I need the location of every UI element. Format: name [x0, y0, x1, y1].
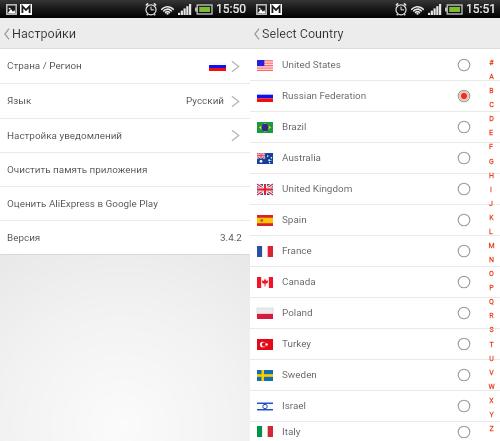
staticText: Страна / Регион — [7, 60, 82, 72]
staticText: O — [489, 270, 494, 278]
staticText: P — [489, 284, 494, 292]
staticText: G — [489, 158, 494, 166]
staticText: Spain — [282, 214, 307, 226]
staticText: K — [489, 214, 494, 222]
staticText: L — [489, 228, 493, 236]
staticText: Очистить память приложения — [7, 164, 148, 176]
button[interactable]: Страна / Регион — [0, 49, 250, 83]
staticText: A — [489, 73, 494, 81]
staticText: Q — [489, 298, 494, 306]
staticText: S — [489, 326, 494, 334]
staticText: Canada — [282, 276, 316, 288]
staticText: Настройка уведомлений — [7, 130, 123, 142]
staticText: Оценить AliExpress в Google Play — [7, 198, 158, 210]
staticText: Y — [489, 411, 494, 419]
button[interactable]: Turkey — [250, 329, 500, 359]
button[interactable]: Spain — [250, 205, 500, 235]
staticText: M — [488, 242, 495, 250]
staticText: Select Country — [262, 26, 344, 41]
staticText: C — [489, 101, 494, 109]
staticText: Sweden — [282, 369, 317, 381]
staticText: J — [489, 200, 493, 208]
staticText: V — [489, 369, 494, 377]
staticText: N — [489, 256, 494, 264]
button[interactable]: Italy — [250, 422, 500, 441]
staticText: Z — [489, 425, 494, 433]
button[interactable]: Back — [250, 18, 500, 49]
staticText: E — [489, 129, 493, 137]
button[interactable]: Israel — [250, 391, 500, 421]
staticText: United Kingdom — [282, 183, 353, 195]
button[interactable]: Canada — [250, 267, 500, 297]
button[interactable]: Настройка уведомлений — [0, 119, 250, 152]
staticText: Turkey — [282, 338, 312, 350]
staticText: Настройки — [12, 26, 77, 41]
button[interactable]: United Kingdom — [250, 174, 500, 204]
staticText: Версия — [7, 232, 41, 244]
button[interactable]: Russian Federation — [250, 81, 500, 111]
button[interactable]: Оценить AliExpress в Google Play — [0, 187, 250, 220]
other: Back — [252, 27, 261, 41]
button[interactable]: Версия — [0, 221, 250, 254]
button[interactable]: Australia — [250, 143, 500, 173]
staticText: Russian Federation — [282, 90, 367, 102]
staticText: Русский — [186, 95, 225, 107]
staticText: H — [489, 172, 494, 180]
staticText: 15:50 — [216, 2, 246, 16]
staticText: 3.4.2 — [220, 232, 242, 244]
button[interactable]: United States — [250, 50, 500, 80]
staticText: U — [489, 355, 494, 363]
button[interactable]: Очистить память приложения — [0, 153, 250, 186]
staticText: Israel — [282, 400, 306, 412]
staticText: W — [488, 383, 495, 391]
other: Back — [2, 27, 11, 41]
staticText: Brazil — [282, 121, 307, 133]
staticText: 15:51 — [466, 2, 496, 16]
staticText: I — [490, 186, 492, 194]
staticText: F — [489, 143, 493, 151]
staticText: X — [489, 397, 494, 405]
button[interactable]: Язык — [0, 84, 250, 118]
button[interactable]: Alphabet index — [482, 49, 500, 441]
staticText: United States — [282, 59, 341, 71]
button[interactable]: Back — [0, 18, 250, 49]
staticText: Australia — [282, 152, 321, 164]
staticText: B — [489, 87, 494, 95]
button[interactable]: Poland — [250, 298, 500, 328]
button[interactable]: Brazil — [250, 112, 500, 142]
staticText: T — [489, 341, 494, 349]
staticText: D — [489, 115, 494, 123]
button[interactable]: France — [250, 236, 500, 266]
staticText: # — [489, 59, 494, 67]
staticText: France — [282, 245, 312, 257]
staticText: Язык — [7, 95, 32, 107]
staticText: R — [489, 312, 494, 320]
staticText: Poland — [282, 307, 313, 319]
button[interactable]: Sweden — [250, 360, 500, 390]
staticText: Italy — [282, 426, 301, 438]
